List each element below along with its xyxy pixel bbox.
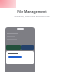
button[interactable] [8, 56, 22, 58]
button[interactable] [21, 45, 34, 50]
button[interactable] [6, 45, 21, 50]
staticText: File Management [17, 9, 47, 14]
staticText: Organise, share and find every file [14, 15, 50, 18]
